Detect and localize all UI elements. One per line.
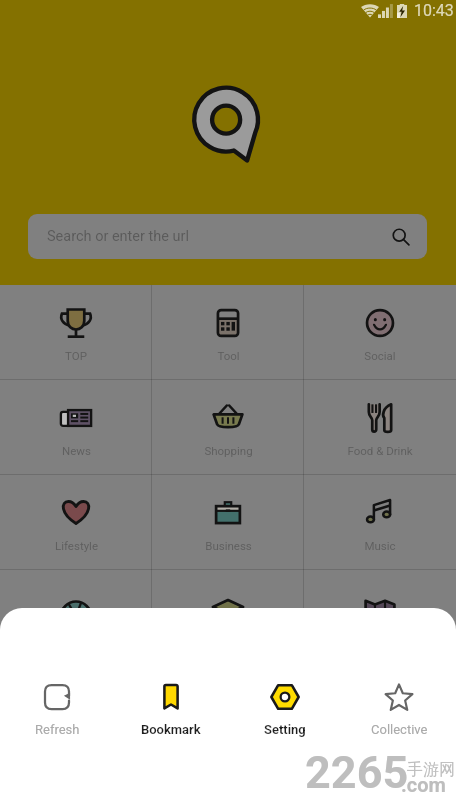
other: Bookmark	[156, 682, 186, 712]
staticText: 10:43	[414, 1, 454, 20]
staticText: 2265	[305, 746, 409, 799]
other: Setting	[270, 682, 300, 712]
other: Collective	[384, 682, 414, 712]
staticText: Music	[364, 539, 396, 552]
staticText: Food & Drink	[347, 444, 413, 457]
staticText: Setting	[264, 722, 306, 737]
button[interactable]: Food & Drink	[304, 380, 456, 475]
button[interactable]: Music	[304, 475, 456, 570]
button[interactable]: Tool	[152, 285, 304, 380]
staticText: Refresh	[35, 722, 80, 737]
button[interactable]: Collective	[342, 608, 456, 754]
button[interactable]: Sport	[0, 570, 152, 665]
staticText: Business	[205, 539, 252, 552]
button[interactable]: Travel	[304, 570, 456, 665]
staticText: Shopping	[204, 444, 253, 457]
button[interactable]: Search or enter the url	[28, 214, 427, 259]
staticText: Lifestyle	[55, 539, 98, 552]
staticText: .com	[401, 773, 446, 796]
staticText: Search or enter the url	[47, 228, 190, 245]
button[interactable]: TOP	[0, 285, 152, 380]
button[interactable]: Shopping	[152, 380, 304, 475]
staticText: Bookmark	[141, 722, 201, 737]
button[interactable]: Refresh	[0, 608, 114, 754]
staticText: 手游网	[407, 760, 455, 780]
other: Search	[392, 228, 410, 246]
button[interactable]: News	[0, 380, 152, 475]
staticText: TOP	[65, 349, 87, 362]
other: Refresh	[42, 682, 72, 712]
staticText: Tool	[217, 349, 240, 362]
button[interactable]: Education	[152, 570, 304, 665]
staticText: Collective	[371, 722, 428, 737]
button[interactable]: Social	[304, 285, 456, 380]
staticText: Social	[364, 349, 396, 362]
button[interactable]: Bookmark	[114, 608, 228, 754]
staticText: News	[62, 444, 91, 457]
button[interactable]: Setting	[228, 608, 342, 754]
button[interactable]: Business	[152, 475, 304, 570]
button[interactable]: Lifestyle	[0, 475, 152, 570]
